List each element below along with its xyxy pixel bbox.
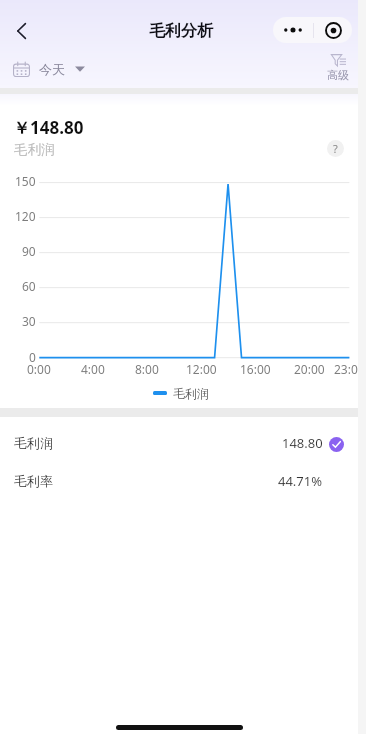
staticText: 毛利分析 (149, 21, 213, 41)
staticText: 毛利润 (173, 386, 209, 401)
staticText: 今天 (39, 61, 65, 77)
staticText: 高级 (327, 68, 349, 82)
button[interactable]: 毛利润 (0, 424, 358, 462)
staticText: 毛利润 (14, 435, 53, 451)
staticText: ￥148.80 (13, 116, 84, 139)
staticText: 毛利润 (14, 141, 55, 158)
staticText: 60 (22, 278, 36, 294)
staticText: 120 (15, 208, 36, 224)
staticText: 148.80 (282, 434, 323, 452)
staticText: 16:00 (240, 361, 271, 377)
button[interactable]: 高级 (322, 54, 354, 82)
staticText: 4:00 (81, 361, 105, 377)
staticText: 30 (22, 313, 36, 329)
button[interactable]: Help (327, 140, 344, 157)
button[interactable]: Back (0, 9, 44, 53)
staticText: 90 (22, 243, 36, 259)
staticText: ? (333, 141, 338, 156)
staticText: 20:00 (294, 361, 325, 377)
staticText: 毛利率 (14, 473, 53, 489)
button[interactable]: 今天 (7, 56, 91, 82)
staticText: 44.71% (278, 472, 323, 490)
staticText: 0 (29, 349, 36, 365)
staticText: 0:00 (27, 361, 51, 377)
button[interactable]: Menu (273, 17, 352, 43)
button[interactable]: 毛利率 (0, 462, 358, 500)
staticText: 150 (15, 173, 36, 189)
staticText: 12:00 (186, 361, 217, 377)
staticText: 23:00 (334, 361, 358, 377)
staticText: 8:00 (135, 361, 159, 377)
